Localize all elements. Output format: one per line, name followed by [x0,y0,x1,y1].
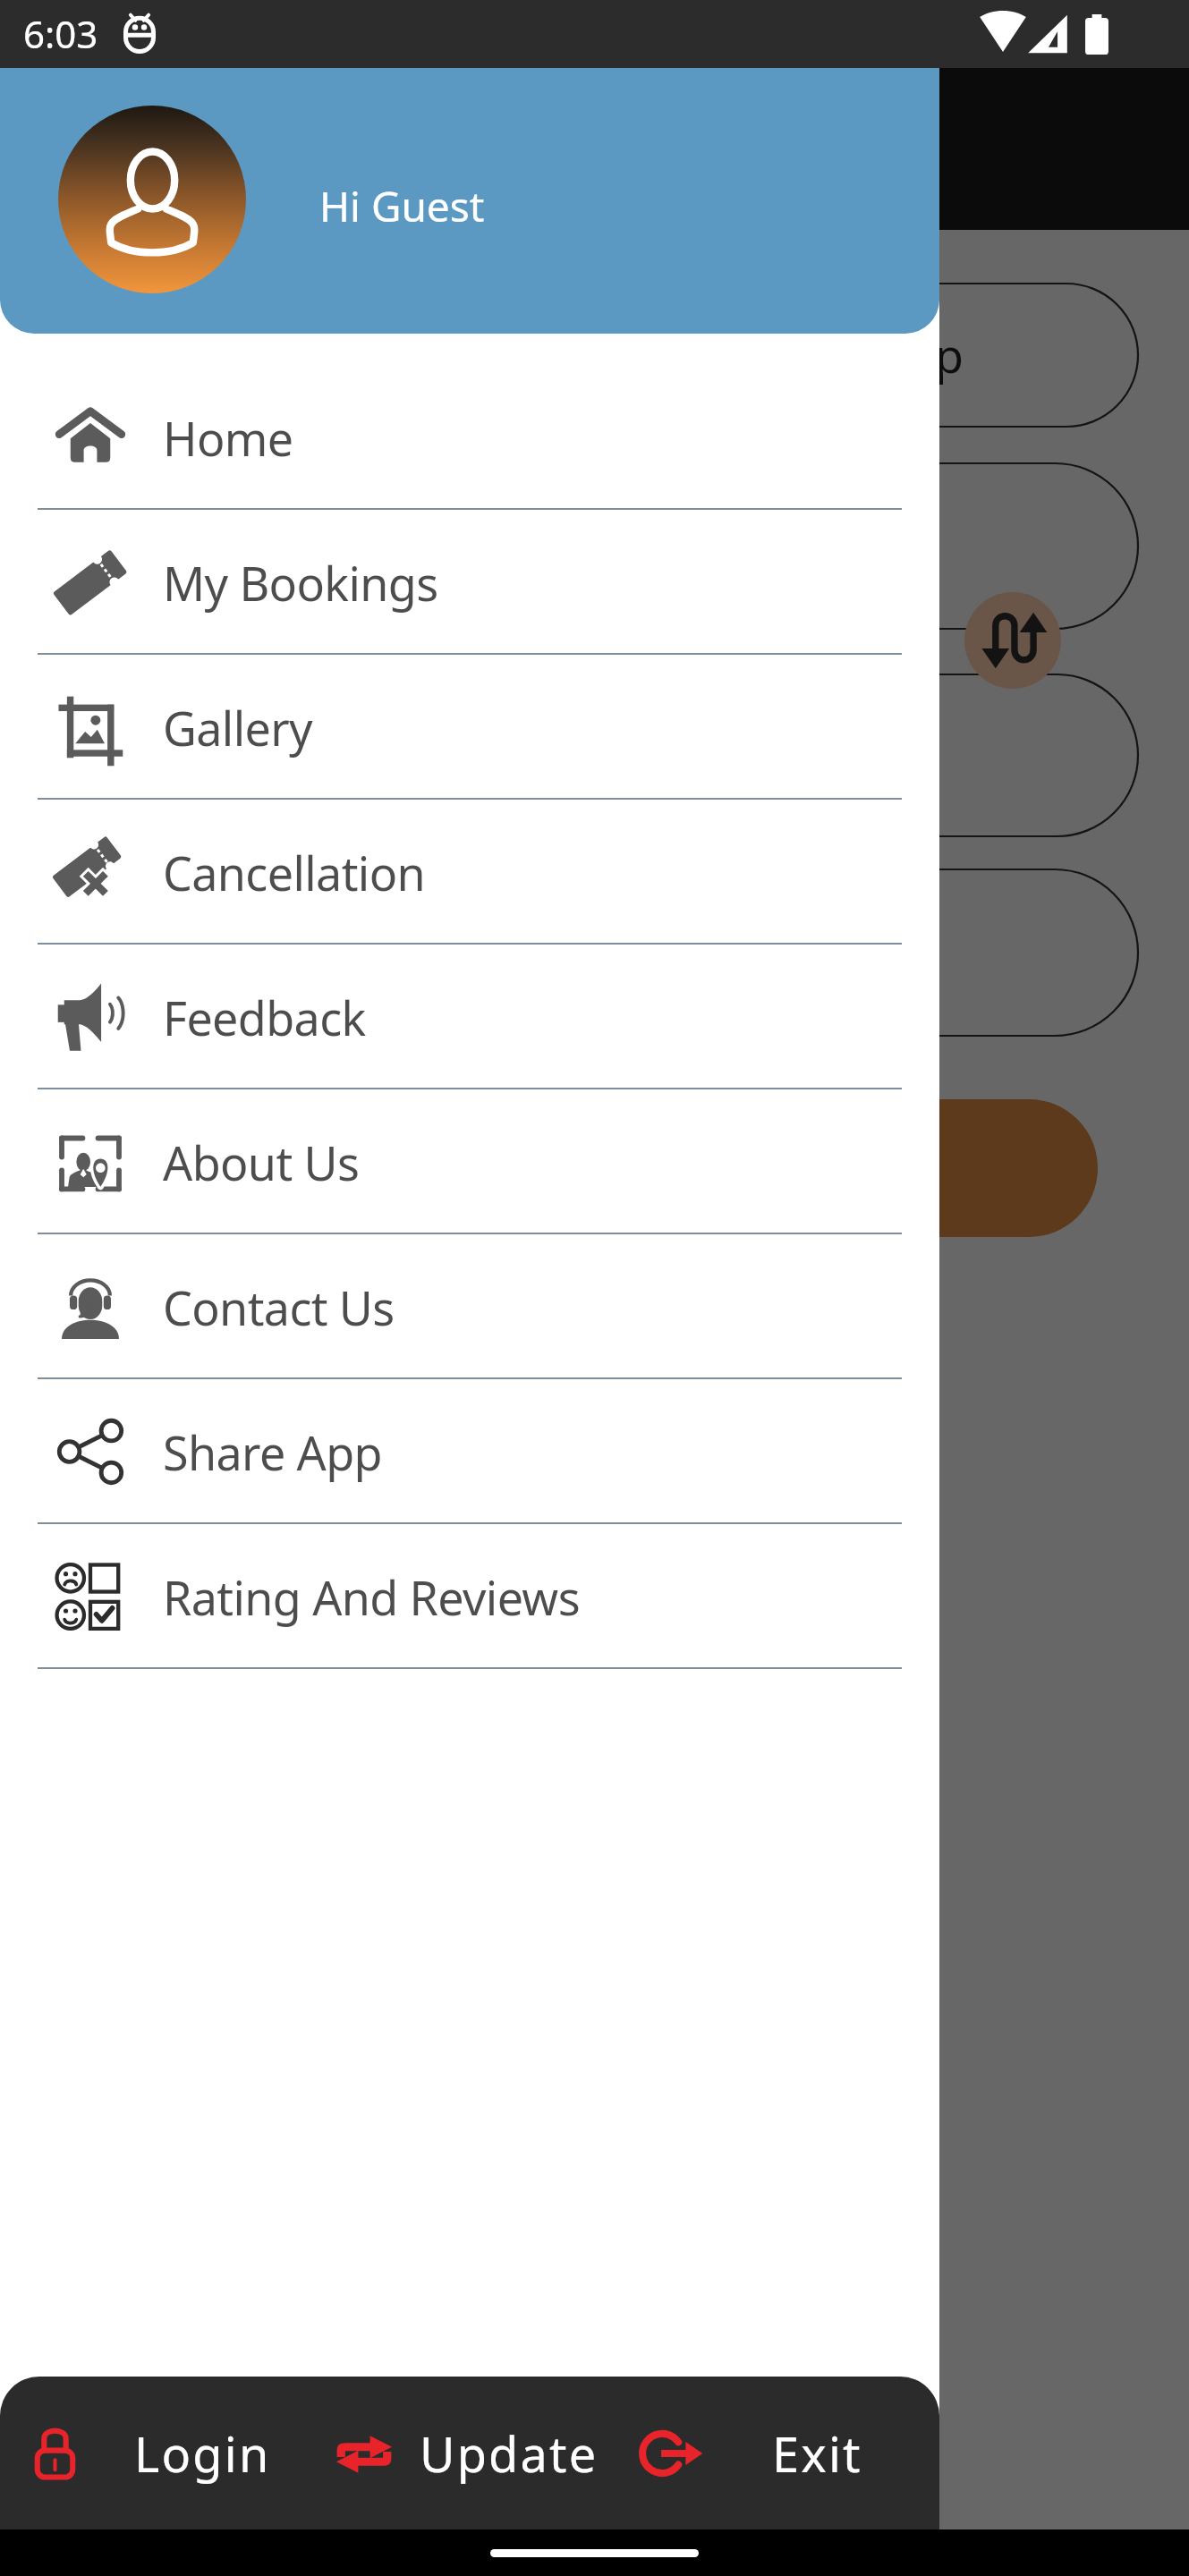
staticText: Contact Us [163,1275,395,1339]
button[interactable]: Login [15,2377,293,2529]
button[interactable]: Update [318,2377,579,2529]
staticText: Hi Guest [319,178,485,234]
staticText: Share App [163,1420,382,1484]
button[interactable]: Share App [0,1379,939,1524]
staticText: Update [420,2420,599,2487]
staticText: Rating And Reviews [163,1565,580,1629]
button[interactable]: Rating And Reviews [0,1524,939,1669]
button[interactable]: Exit [624,2377,931,2529]
button[interactable]: Feedback [0,945,939,1089]
staticText: My Bookings [163,551,438,614]
staticText: Exit [772,2420,862,2487]
staticText: Home [163,406,293,470]
staticText: Cancellation [163,841,426,904]
button[interactable]: My Bookings [0,510,939,655]
staticText: 6:03 [23,8,98,59]
staticText: Enter Pickup [690,323,964,386]
button[interactable]: Home [0,365,939,510]
staticText: Login [134,2420,271,2487]
other: Swap [964,592,1061,689]
staticText: Gallery [163,696,312,759]
button[interactable]: Hi Guest [0,68,939,334]
staticText: Feedback [163,986,366,1049]
staticText: About Us [163,1131,360,1194]
button[interactable]: About Us [0,1089,939,1234]
button[interactable]: Contact Us [0,1234,939,1379]
button[interactable]: Cancellation [0,800,939,945]
button[interactable]: Gallery [0,655,939,800]
